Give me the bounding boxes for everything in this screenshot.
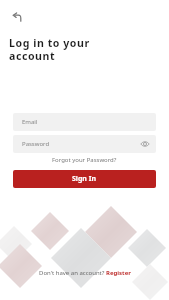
staticText: Password [22, 140, 50, 148]
button[interactable]: Password [13, 135, 156, 153]
button[interactable]: Back [9, 11, 25, 27]
staticText: Email [22, 118, 38, 126]
button[interactable]: Forgot your Password? [50, 154, 119, 166]
button[interactable]: Don't have an account? [39, 269, 131, 277]
button[interactable]: Email [13, 113, 156, 131]
staticText: Don't have an account? [39, 269, 106, 277]
staticText: Log in to your account [9, 36, 90, 63]
button[interactable]: Sign In [13, 170, 156, 188]
staticText: Register [106, 269, 131, 277]
staticText: Sign In [72, 174, 97, 184]
button[interactable]: Show password [140, 139, 150, 149]
